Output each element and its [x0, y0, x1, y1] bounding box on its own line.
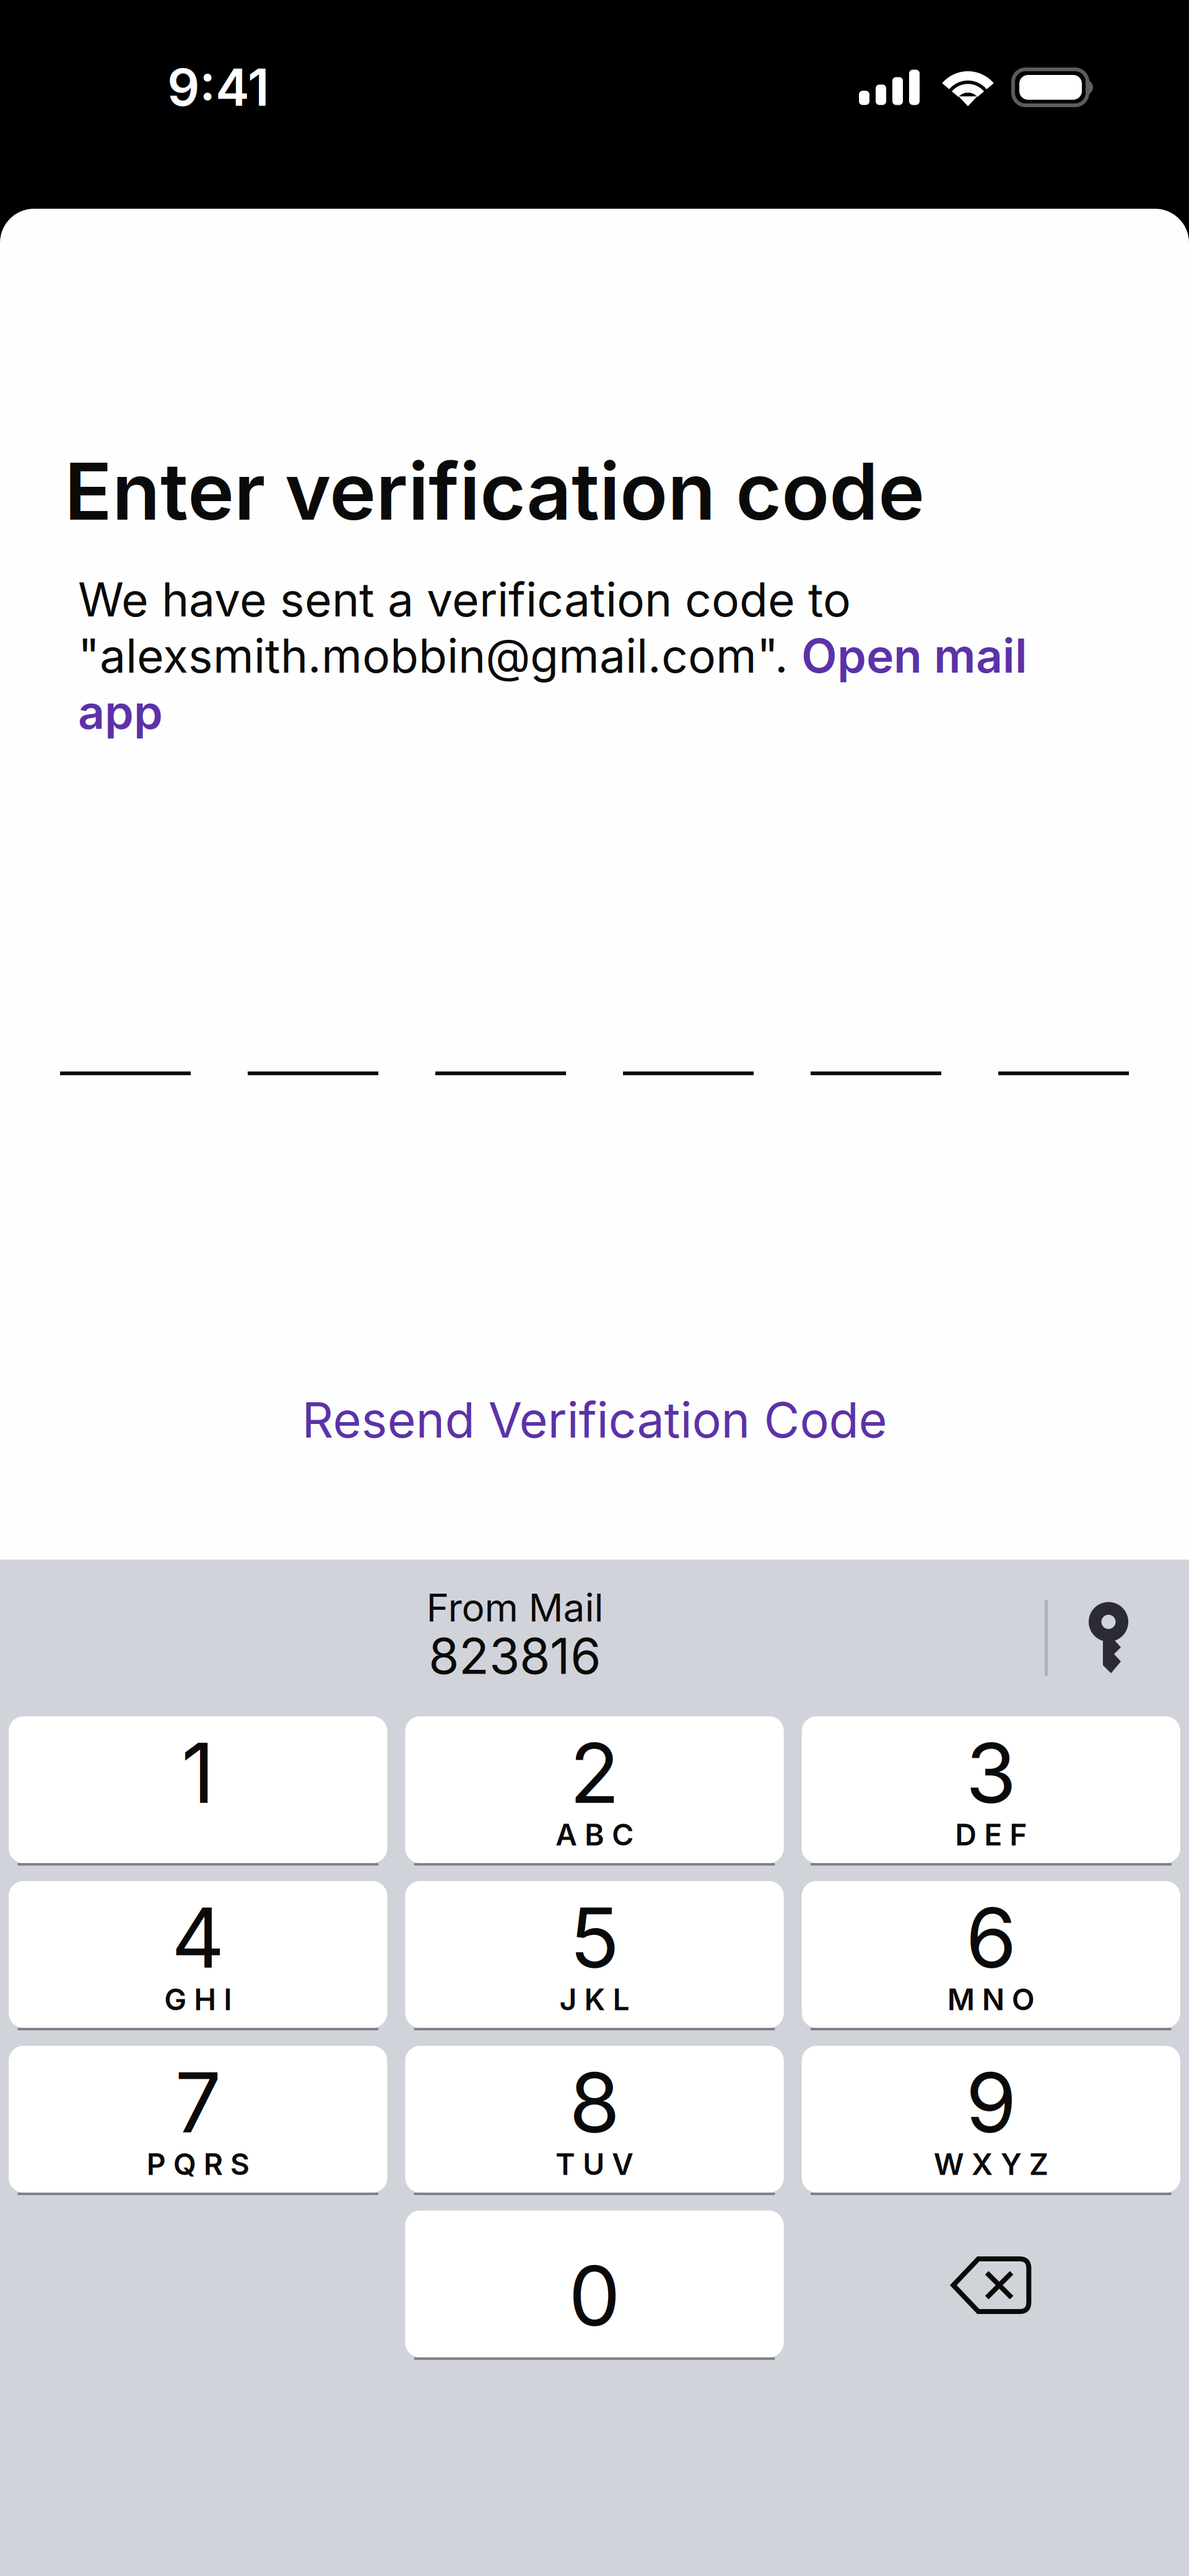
button[interactable]: 7: [9, 2046, 387, 2195]
button[interactable]: 1: [9, 1716, 387, 1866]
staticText: G H I: [164, 1981, 232, 2017]
button[interactable]: 8: [405, 2046, 784, 2195]
button[interactable]: 5: [405, 1881, 784, 2030]
staticText: 5: [569, 1888, 620, 1988]
staticText: T U V: [555, 2146, 634, 2182]
staticText: 9:41: [167, 57, 269, 118]
staticText: 823816: [429, 1626, 601, 1686]
button[interactable]: 6: [802, 1881, 1180, 2030]
button[interactable]: Resend Verification Code: [0, 1374, 1189, 1465]
button[interactable]: 9: [802, 2046, 1180, 2195]
staticText: 0: [568, 2246, 621, 2346]
staticText: 4: [171, 1888, 225, 1988]
button[interactable]: 4: [9, 1881, 387, 2030]
staticText: 3: [966, 1723, 1016, 1823]
button[interactable]: Passwords: [1089, 1601, 1131, 1674]
staticText: J K L: [560, 1981, 629, 2017]
staticText: 7: [175, 2053, 221, 2152]
staticText: A B C: [555, 1817, 634, 1853]
staticText: P Q R S: [147, 2146, 249, 2182]
staticText: Resend Verification Code: [302, 1390, 887, 1449]
staticText: 6: [966, 1888, 1016, 1988]
button[interactable]: 3: [802, 1716, 1180, 1866]
staticText: 9: [966, 2053, 1016, 2152]
button[interactable]: From Mail: [0, 1560, 1030, 1716]
staticText: 1: [181, 1723, 215, 1823]
staticText: 8: [569, 2053, 620, 2152]
staticText: Enter verification code: [64, 443, 925, 539]
staticText: W X Y Z: [934, 2146, 1048, 2182]
button[interactable]: 2: [405, 1716, 784, 1866]
button[interactable]: Delete: [802, 2211, 1180, 2360]
staticText: From Mail: [426, 1584, 603, 1631]
staticText: D E F: [955, 1817, 1027, 1853]
staticText: 2: [569, 1723, 620, 1823]
staticText: M N O: [947, 1981, 1035, 2017]
button[interactable]: 0: [405, 2211, 784, 2360]
staticText: We have sent a verification code to "ale…: [78, 572, 1027, 740]
